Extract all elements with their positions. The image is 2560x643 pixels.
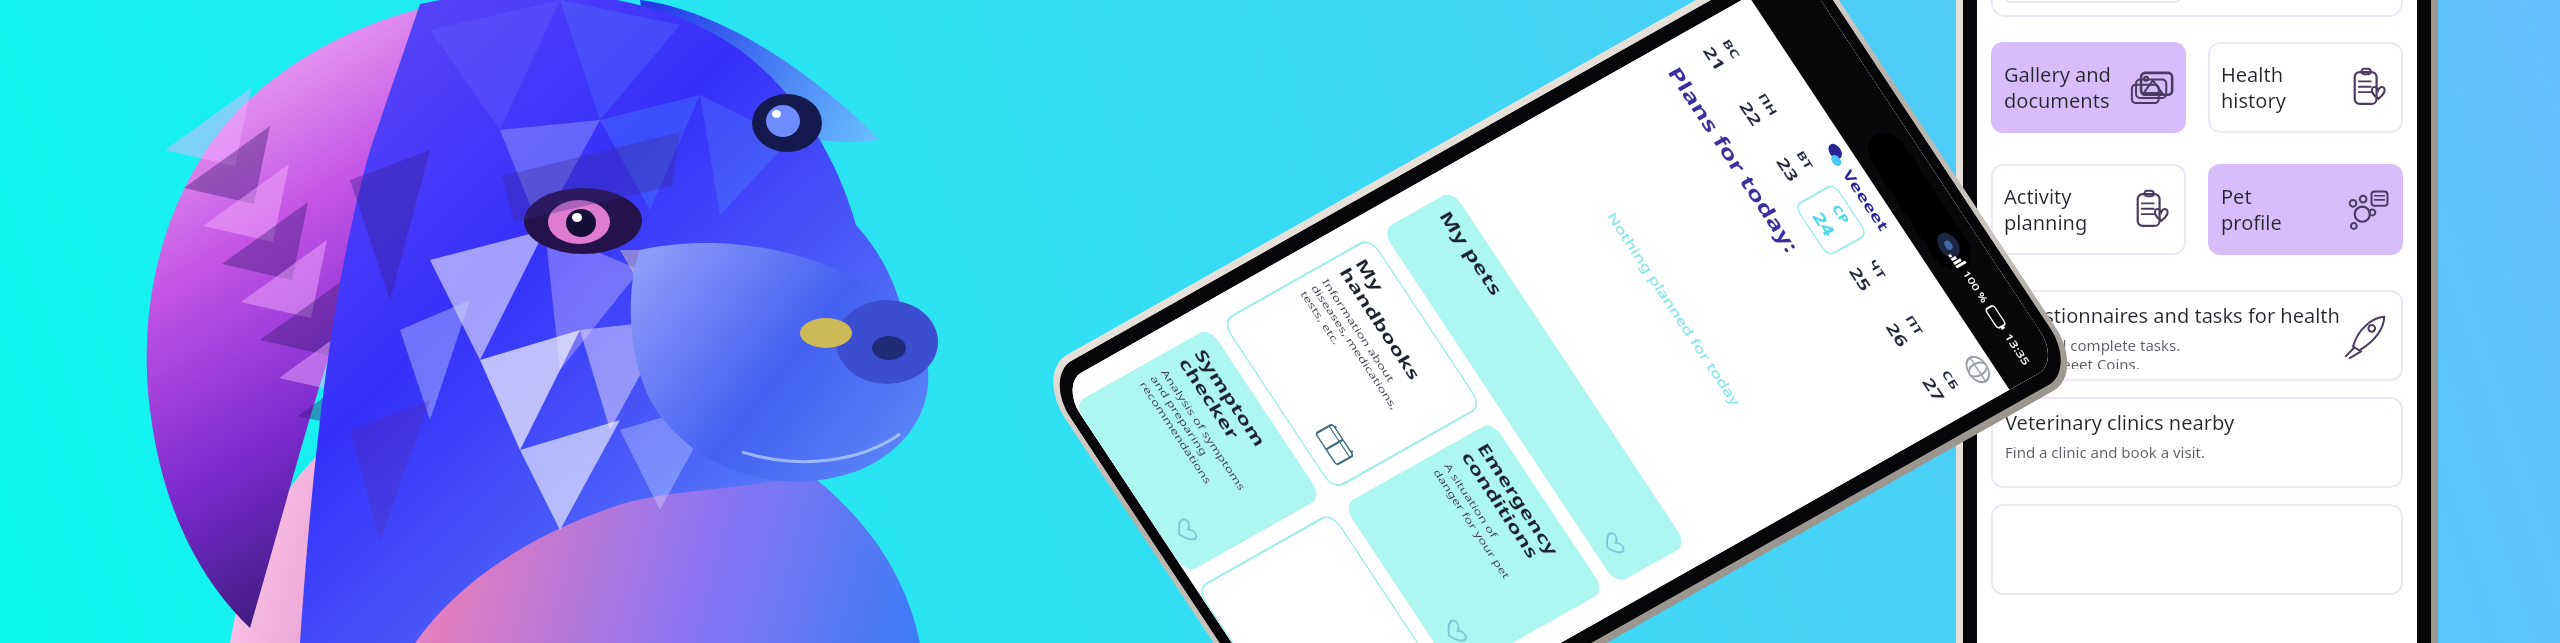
staticText: СБ [1937,366,1964,394]
staticText: ВТ [1792,146,1818,173]
staticText: Nothing planned for today [1593,207,1755,411]
staticText: Emergency conditions [1450,434,1570,572]
staticText: Analysis of symptoms and preparing recom… [1130,363,1256,509]
button[interactable]: ПТ [1864,288,1945,373]
staticText: Find a clinic and book a visit. [2005,442,2205,462]
staticText: 24 [1806,206,1842,243]
staticText: 13:35 [2000,330,2035,369]
button[interactable]: ПН [1717,67,1798,152]
button[interactable]: Activity planning [1991,164,2186,255]
staticText: 26 [1879,317,1915,354]
staticText: Information about diseases, medications,… [1291,272,1419,422]
staticText: Plans for today: [1652,59,1816,259]
staticText: 100 % [1959,267,1993,306]
staticText: ЧТ [1864,255,1891,283]
button[interactable]: Symptom checker [1064,311,1331,590]
staticText: Plan and complete tasks. Earn Veeeet Coi… [2005,335,2181,369]
button[interactable]: Questionnaires and tasks for health [1991,290,2403,381]
staticText: СР [1828,200,1854,228]
staticText: 21 [1697,40,1732,78]
button[interactable]: Language [1958,348,1998,391]
staticText: ВС [1718,35,1745,63]
staticText: 27 [1916,371,1951,409]
staticText: 23 [1770,151,1805,188]
staticText: Pet profile [2221,183,2282,236]
staticText: 22 [1733,95,1769,133]
staticText: Health history [2221,61,2286,114]
button[interactable]: ЧТ [1827,233,1908,317]
button[interactable] [1186,495,1454,643]
staticText: Veterinary clinics nearby [2005,409,2235,436]
staticText: My pets [1430,204,1513,302]
button[interactable]: My pets [1362,182,1707,593]
button[interactable]: СБ [1900,343,1981,428]
staticText: ПТ [1901,311,1928,340]
staticText: Symptom checker [1168,341,1277,463]
button[interactable] [1991,504,2403,595]
button[interactable]: СР [1791,178,1871,262]
button[interactable]: Emergency conditions [1333,403,1614,643]
staticText: My handbooks [1328,250,1448,388]
staticText: Questionnaires and tasks for health [2005,302,2340,329]
button[interactable]: Ressie [1991,0,2403,17]
staticText: ПН [1754,89,1782,119]
staticText: Veeeet [1835,164,1897,237]
staticText: 25 [1842,261,1878,298]
button[interactable]: Veterinary clinics nearby [1991,397,2403,488]
button[interactable]: Pet profile [2208,164,2403,255]
button[interactable]: My handbooks [1211,219,1492,509]
staticText: Gallery and documents [2004,61,2111,114]
button[interactable]: Gallery and documents [1991,42,2186,133]
staticText: Activity planning [2004,183,2088,236]
button[interactable]: Health history [2208,42,2403,133]
staticText: A situation of danger for your pet [1424,458,1530,584]
other: Veeeet logo [1819,137,1853,174]
button[interactable]: ВТ [1754,123,1835,207]
button[interactable]: ВС [1681,12,1762,97]
